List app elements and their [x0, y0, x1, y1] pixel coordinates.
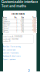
button[interactable]: Page three [27, 69, 30, 72]
staticText: Cable [3, 18, 7, 20]
staticText: 10.40 [32, 29, 36, 31]
staticText: Custom functions [3, 52, 19, 54]
staticText: 6.75 [21, 26, 24, 28]
staticText: Customizable interface [1, 0, 38, 4]
staticText: 2 [16, 18, 17, 20]
button[interactable]: Export options [3, 58, 33, 61]
staticText: count = 9 [3, 40, 10, 42]
staticText: 5.20 [21, 29, 24, 31]
staticText: Keyboard shortcuts [3, 55, 21, 57]
staticText: Unit conversion [3, 49, 16, 51]
staticText: 4 [16, 22, 17, 24]
staticText: 4.50 [21, 18, 24, 20]
staticText: Qty [14, 17, 17, 19]
staticText: Battery [3, 22, 10, 24]
staticText: 13.00 [32, 22, 36, 24]
staticText: Inline maths [11, 12, 24, 15]
staticText: Cover [3, 29, 8, 31]
staticText: avg(unit) = 8.37 USD [3, 38, 18, 40]
staticText: Item [3, 17, 7, 19]
staticText: 9.00 [33, 18, 36, 20]
staticText: Stand [3, 27, 8, 29]
staticText: Case [3, 26, 7, 28]
staticText: 1 [16, 27, 17, 29]
button[interactable]: Unit conversion [3, 48, 33, 51]
button[interactable]: Keyboard shortcuts [3, 54, 33, 58]
staticText: Number formatting [3, 45, 21, 48]
staticText: Charger [3, 24, 10, 26]
staticText: 1 [16, 20, 17, 22]
staticText: Mount [3, 31, 9, 33]
staticText: Unit [21, 17, 24, 19]
button[interactable]: Custom functions [3, 51, 33, 54]
staticText: 12.00 [20, 20, 24, 22]
staticText: 7.40 [21, 31, 24, 33]
staticText: Export options [3, 58, 16, 60]
staticText: Total [32, 17, 36, 19]
staticText: 1 [16, 24, 17, 26]
staticText: 9.90 [21, 27, 24, 29]
staticText: Text and maths [1, 4, 26, 8]
staticText: 18.50 [32, 24, 36, 26]
staticText: 9.90 [33, 27, 36, 29]
staticText: 2 [16, 29, 17, 31]
staticText: 20.25 [32, 26, 36, 28]
staticText: 3.25 [21, 22, 24, 24]
staticText: 7.40 [33, 31, 36, 33]
staticText: 12.00 [32, 20, 36, 22]
staticText: 1 [16, 31, 17, 33]
staticText: 3 [28, 69, 30, 72]
button[interactable]: Number formatting [3, 45, 33, 48]
staticText: sum(total) = 100.45 USD [3, 36, 22, 38]
staticText: 18.50 [20, 24, 24, 26]
staticText: Adapter [3, 20, 10, 22]
